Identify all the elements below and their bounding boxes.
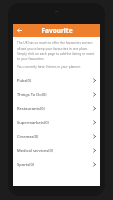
staticText: Cinemas(0) <box>17 134 93 139</box>
button[interactable]: Sports(0) <box>13 157 100 171</box>
button[interactable]: Things To Do(0) <box>13 87 100 101</box>
staticText: The UK has so much to offer the favourit… <box>17 41 96 61</box>
staticText: Sports(0) <box>17 162 93 167</box>
button[interactable]: Restaurants(0) <box>13 101 100 115</box>
staticText: Pubs(0) <box>17 78 93 83</box>
button[interactable]: Pubs(0) <box>13 73 100 87</box>
button[interactable]: Cinemas(0) <box>13 129 100 143</box>
staticText: You currently have 0 items in your plann… <box>17 65 81 69</box>
staticText: Restaurants(0) <box>17 106 93 111</box>
button[interactable]: Medical services(0) <box>13 143 100 157</box>
staticText: Supermarkets(0) <box>17 120 93 125</box>
staticText: Medical services(0) <box>17 148 93 153</box>
staticText: Things To Do(0) <box>17 92 93 97</box>
button[interactable]: Back <box>15 26 24 35</box>
staticText: Favourite <box>41 26 73 35</box>
button[interactable]: Supermarkets(0) <box>13 115 100 129</box>
